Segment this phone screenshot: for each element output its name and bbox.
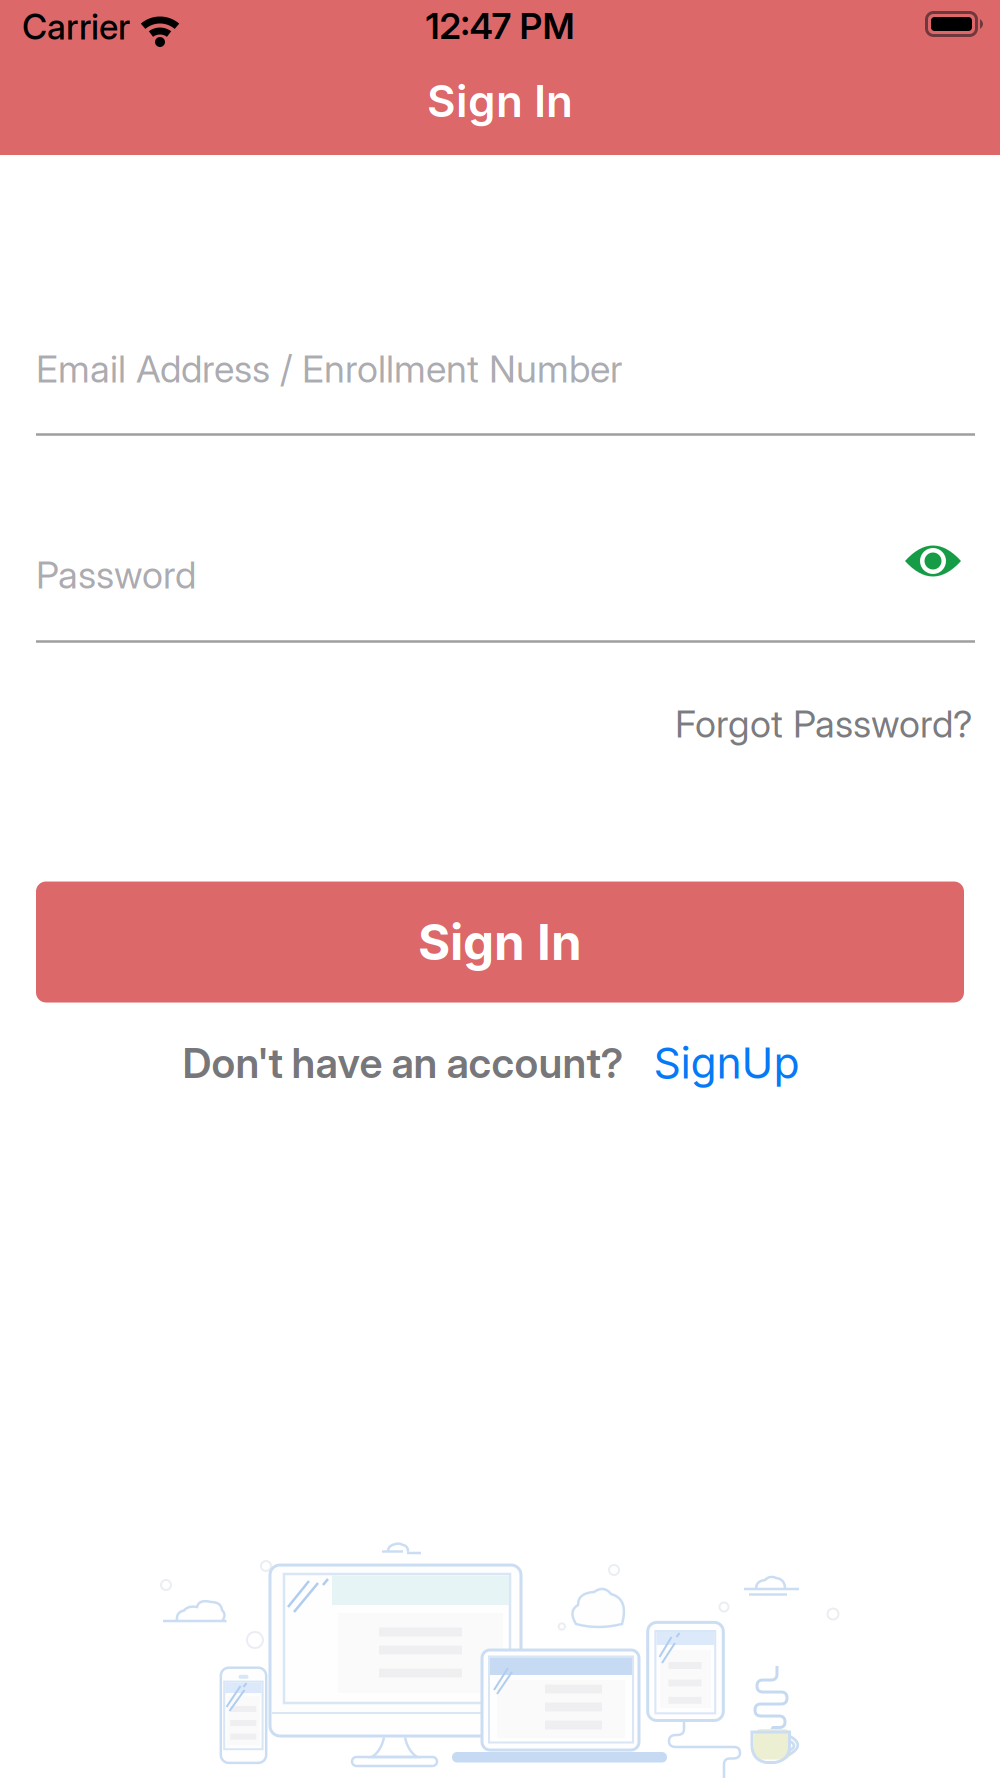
staticText: Password (36, 553, 196, 597)
button[interactable]: Show password (905, 544, 961, 578)
staticText: Sign In (427, 75, 573, 127)
staticText: Don't have an account? (182, 1039, 623, 1087)
staticText: Forgot Password? (675, 702, 972, 746)
button[interactable]: SignUp (653, 1038, 799, 1088)
staticText: Email Address / Enrollment Number (36, 347, 622, 391)
staticText: Carrier (22, 7, 130, 47)
button[interactable]: Sign In (36, 881, 964, 1002)
staticText: SignUp (653, 1038, 799, 1088)
staticText: Sign In (418, 913, 582, 971)
button[interactable]: Forgot Password? (675, 702, 1000, 746)
staticText: 12:47 PM (425, 5, 574, 47)
